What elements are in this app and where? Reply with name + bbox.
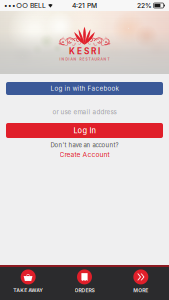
staticText: or use email address xyxy=(52,108,116,116)
button[interactable]: ORDERS xyxy=(56,267,113,300)
button[interactable]: Log in with Facebook xyxy=(6,82,163,95)
staticText: I N D I A N R E S T A U R A N T xyxy=(59,57,109,61)
button[interactable]: MORE xyxy=(113,267,169,300)
staticText: •••○○ BELL xyxy=(4,1,46,10)
staticText: Log In xyxy=(73,126,95,135)
button[interactable]: TAKE AWAY xyxy=(0,267,56,300)
staticText: K E S R I xyxy=(69,46,100,56)
staticText: MORE xyxy=(133,287,148,293)
button[interactable]: Create Account xyxy=(59,151,109,158)
staticText: 4:21 PM xyxy=(72,1,97,10)
staticText: Don't have an account? xyxy=(50,141,118,149)
staticText: 22% xyxy=(137,1,152,10)
staticText: Log in with Facebook xyxy=(50,85,118,92)
staticText: Create Account xyxy=(59,150,109,159)
staticText: TAKE AWAY xyxy=(13,287,43,293)
button[interactable]: Log In xyxy=(6,123,163,138)
staticText: ORDERS xyxy=(74,287,94,293)
